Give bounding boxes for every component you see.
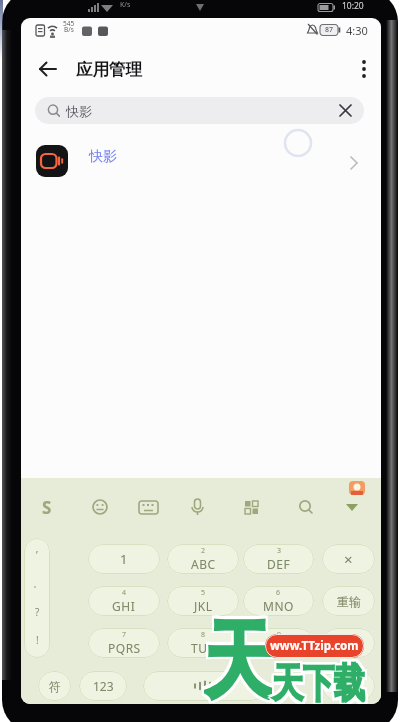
staticText: MNO	[263, 598, 294, 614]
staticText: 天下载	[274, 658, 367, 704]
staticText: S	[42, 496, 52, 519]
staticText: JKL	[194, 598, 213, 614]
staticText: www.TTzip.com	[270, 638, 359, 654]
staticText: 7	[122, 630, 127, 640]
staticText: 5	[201, 588, 206, 598]
staticText: 天	[206, 611, 274, 704]
button[interactable]	[322, 671, 375, 701]
staticText: 快影	[66, 103, 92, 119]
staticText: ABC	[191, 556, 216, 572]
staticText: 。	[33, 578, 42, 589]
staticText: 天下载	[274, 655, 367, 704]
staticText: 1	[120, 550, 128, 568]
button[interactable]: 123	[79, 671, 127, 701]
staticText: 天下载	[270, 658, 363, 704]
staticText: 快影	[89, 148, 117, 166]
button[interactable]: 8	[167, 628, 239, 658]
button[interactable]: 6	[243, 586, 314, 616]
button[interactable]: 1	[88, 544, 160, 574]
button[interactable]: www.TTzip.com	[265, 634, 364, 658]
button[interactable]: 5	[167, 586, 239, 616]
staticText: 10:20	[342, 0, 364, 12]
staticText: WXYZ	[262, 640, 296, 656]
button[interactable]	[182, 492, 212, 522]
button[interactable]	[322, 628, 375, 658]
button[interactable]	[290, 492, 320, 522]
button[interactable]	[236, 492, 266, 522]
staticText: 3	[277, 546, 282, 556]
staticText: 天下载	[272, 658, 365, 704]
button[interactable]: 9	[243, 628, 314, 658]
button[interactable]: 重输	[322, 586, 375, 616]
staticText: 天	[202, 611, 270, 704]
staticText: 天下载	[270, 661, 363, 704]
staticText: !	[36, 633, 39, 647]
staticText: ?	[35, 605, 40, 619]
button[interactable]	[329, 97, 364, 124]
button[interactable]	[143, 671, 266, 701]
staticText: 应用管理	[76, 59, 142, 80]
staticText: 9	[277, 630, 282, 640]
button[interactable]: 2	[167, 544, 239, 574]
button[interactable]	[31, 492, 61, 522]
button[interactable]: 7	[88, 628, 160, 658]
staticText: 天	[206, 608, 274, 704]
staticText: DEF	[267, 556, 291, 572]
button[interactable]: 3	[243, 544, 314, 574]
button[interactable]	[85, 492, 115, 522]
button[interactable]	[337, 492, 367, 522]
staticText: 天下载	[270, 655, 363, 704]
staticText: 天	[204, 611, 272, 704]
staticText: 4	[122, 588, 127, 598]
staticText: 545	[63, 19, 75, 28]
button[interactable]	[33, 56, 63, 82]
staticText: ×	[344, 549, 353, 569]
button[interactable]: 快影	[35, 97, 364, 124]
staticText: 2	[201, 546, 206, 556]
staticText: ’	[36, 548, 38, 562]
staticText: K/s	[120, 0, 131, 10]
staticText: PQRS	[108, 640, 141, 656]
staticText: TUV	[191, 640, 216, 656]
staticText: 天	[204, 606, 272, 704]
staticText: 天下载	[274, 661, 367, 704]
button[interactable]	[351, 56, 377, 82]
staticText: 87	[325, 25, 334, 35]
staticText: 6	[276, 588, 281, 598]
button[interactable]	[133, 492, 163, 522]
staticText: 天下载	[272, 661, 365, 704]
staticText: 天	[202, 606, 270, 704]
staticText: 天	[206, 606, 274, 704]
staticText: 天	[204, 608, 272, 704]
button[interactable]: ×	[322, 544, 375, 574]
staticText: GHI	[112, 598, 136, 614]
button[interactable]	[349, 481, 365, 495]
button[interactable]: ’	[24, 538, 50, 658]
staticText: 天下载	[272, 655, 365, 704]
button[interactable]: 符	[38, 671, 71, 701]
staticText: 天	[202, 608, 270, 704]
button[interactable]: 4	[88, 586, 160, 616]
staticText: 4:30	[346, 23, 368, 38]
staticText: 符	[49, 679, 61, 694]
staticText: B/s	[64, 25, 74, 34]
staticText: 重输	[337, 594, 361, 609]
staticText: 8	[201, 630, 206, 640]
button[interactable]: 快影	[21, 140, 381, 182]
staticText: 123	[93, 678, 114, 694]
